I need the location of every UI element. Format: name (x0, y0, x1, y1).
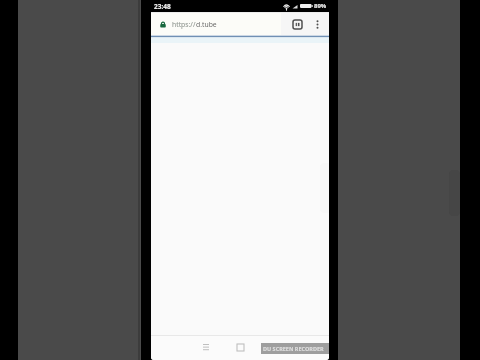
staticText: d.tube (196, 20, 217, 29)
staticText: DU SCREEN RECORDER (263, 345, 324, 352)
staticText: 89% (314, 2, 327, 10)
staticText: https:// (172, 20, 196, 29)
staticText: 23:48 (154, 2, 171, 11)
button[interactable]: Tabs (290, 17, 304, 31)
button[interactable]: Home (233, 340, 247, 354)
button[interactable]: Recents (199, 340, 213, 354)
button[interactable]: Search or type web address (151, 13, 281, 35)
button[interactable]: More options (310, 17, 324, 31)
